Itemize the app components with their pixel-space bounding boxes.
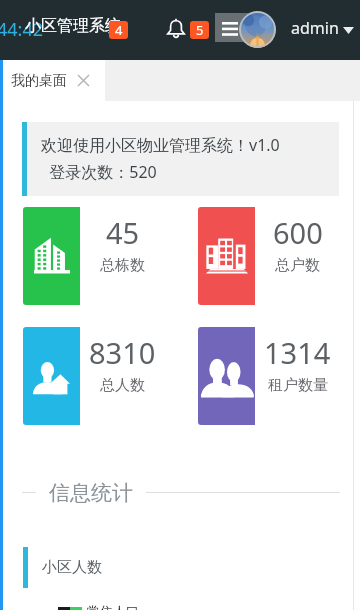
staticText: 44:42 — [0, 17, 44, 42]
button[interactable]: Profile — [239, 11, 276, 48]
staticText: admin — [291, 17, 339, 39]
staticText: 总户数 — [275, 256, 320, 275]
button[interactable]: 1314 — [198, 327, 340, 425]
staticText: 欢迎使用小区物业管理系统！v1.0 — [41, 134, 280, 156]
staticText: 45 — [106, 213, 140, 252]
button[interactable]: 4 — [109, 21, 128, 39]
staticText: 5 — [196, 21, 204, 39]
staticText: 信息统计 — [49, 480, 133, 505]
staticText: 600 — [273, 213, 323, 252]
staticText: 8310 — [89, 333, 156, 372]
staticText: 总栋数 — [100, 256, 145, 275]
staticText: 总人数 — [100, 376, 145, 395]
button[interactable]: 我的桌面 — [0, 60, 105, 101]
button[interactable]: 8310 — [23, 327, 165, 425]
button[interactable]: Menu — [215, 13, 251, 42]
staticText: 我的桌面 — [11, 72, 67, 90]
staticText: 4 — [115, 21, 123, 39]
button[interactable]: 小区人数 — [23, 547, 339, 588]
staticText: 小区管理系统 — [25, 16, 121, 36]
staticText: 租户数量 — [268, 376, 328, 395]
button[interactable]: admin — [291, 17, 354, 39]
staticText: 小区人数 — [42, 558, 102, 577]
staticText: 登录次数：520 — [41, 161, 157, 183]
button[interactable]: Close tab — [77, 74, 90, 87]
staticText: 1314 — [264, 333, 331, 372]
staticText: 常住人口 — [87, 603, 139, 610]
button[interactable]: 5 — [190, 21, 209, 39]
button[interactable]: Notifications — [167, 18, 185, 39]
button[interactable]: 45 — [23, 207, 165, 305]
button[interactable]: 600 — [198, 207, 340, 305]
